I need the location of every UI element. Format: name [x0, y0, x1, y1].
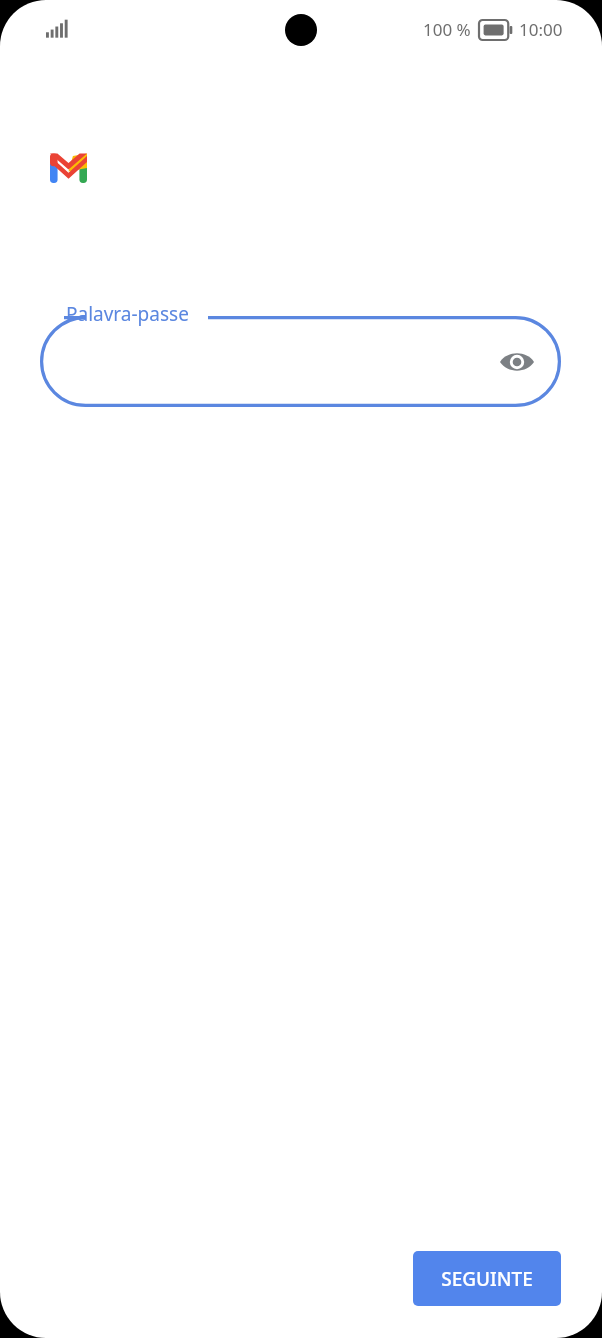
button[interactable]: Palavra-passe [40, 316, 561, 407]
staticText: SEGUINTE [441, 1266, 533, 1292]
button[interactable]: SEGUINTE [413, 1251, 561, 1306]
button[interactable]: Mostrar palavra-passe [493, 338, 541, 386]
staticText: 10:00 [519, 18, 563, 41]
staticText: 100 % [423, 18, 471, 41]
staticText: Palavra-passe [66, 301, 189, 327]
